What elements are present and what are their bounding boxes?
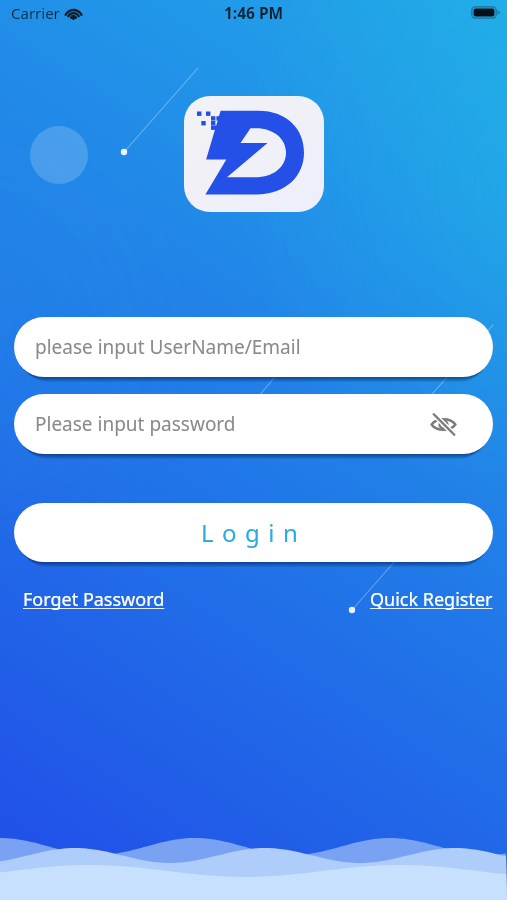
staticText: Carrier	[11, 3, 60, 23]
button[interactable]: Quick Register	[370, 587, 493, 612]
button[interactable]: Forget Password	[23, 587, 165, 612]
button[interactable]: Show password	[426, 407, 460, 441]
staticText: please input UserName/Email	[35, 334, 301, 360]
staticText: Login	[201, 516, 307, 549]
button[interactable]: Please input password	[14, 394, 493, 454]
staticText: Please input password	[35, 411, 236, 437]
staticText: 1:46 PM	[224, 2, 284, 23]
button[interactable]: Login	[14, 503, 493, 562]
button[interactable]: please input UserName/Email	[14, 317, 493, 377]
